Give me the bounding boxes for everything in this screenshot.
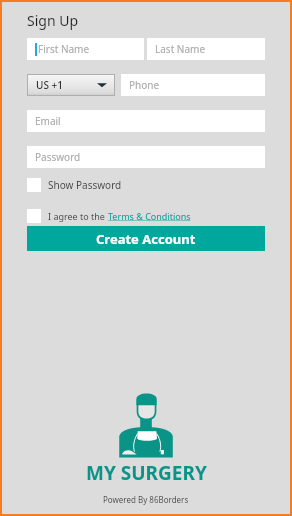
button[interactable]: Create Account [27, 226, 265, 251]
staticText: First Name [38, 42, 90, 56]
staticText: MY SURGERY [86, 460, 207, 486]
staticText: Create Account [96, 230, 196, 248]
staticText: Email [35, 114, 61, 128]
button[interactable]: Password [27, 146, 265, 168]
staticText: Phone [129, 78, 160, 92]
button[interactable]: Show Password [27, 175, 122, 195]
staticText: Password [35, 150, 81, 164]
button[interactable]: Email [27, 110, 265, 132]
staticText: Show Password [48, 178, 122, 192]
staticText: Sign Up [27, 11, 79, 30]
button[interactable]: US +1 [27, 74, 115, 96]
staticText: I agree to the [48, 210, 108, 222]
staticText: Terms & Conditions [108, 210, 191, 222]
button[interactable]: First Name [27, 38, 144, 60]
staticText: US +1 [36, 78, 63, 92]
staticText: Powered By 86Borders [103, 494, 189, 505]
button[interactable]: Last Name [147, 38, 265, 60]
button[interactable]: Phone [121, 74, 265, 96]
button[interactable]: I agree to the [27, 206, 191, 226]
staticText: Last Name [155, 42, 206, 56]
